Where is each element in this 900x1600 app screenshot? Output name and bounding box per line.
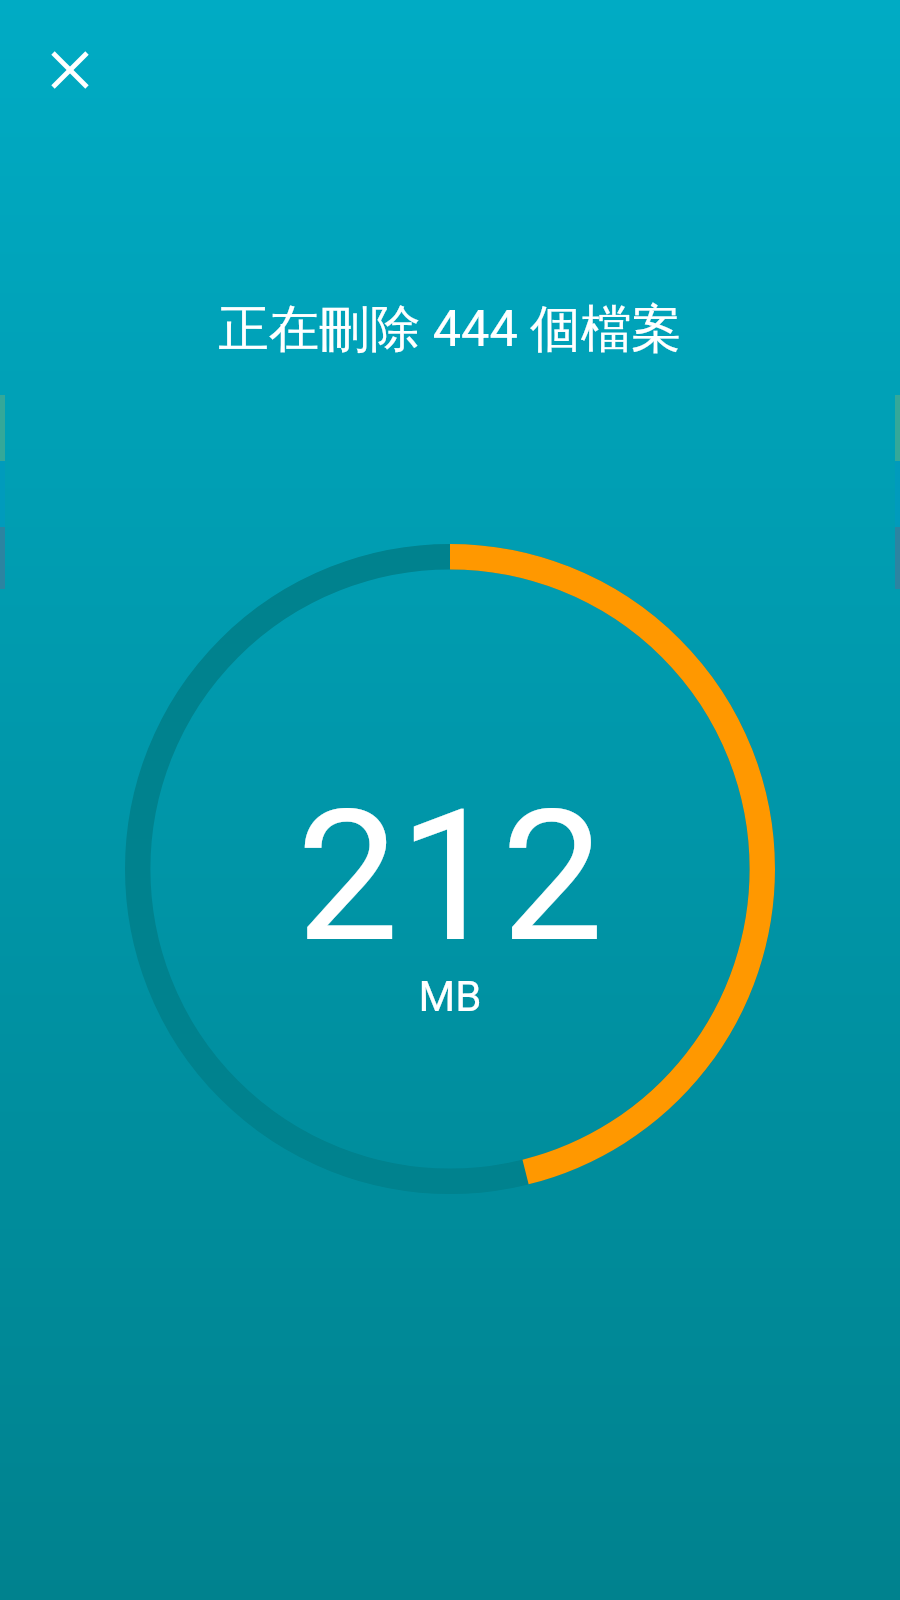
button[interactable]: Close: [34, 34, 106, 106]
staticText: 212: [0, 770, 900, 983]
staticText: MB: [0, 972, 900, 1021]
staticText: 正在刪除 444 個檔案: [0, 297, 900, 361]
